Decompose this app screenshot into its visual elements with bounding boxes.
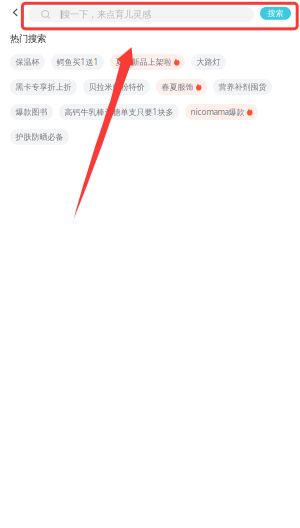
button[interactable]: Back [6, 1, 24, 23]
button[interactable]: 夏日新品上架啦 [110, 54, 185, 70]
staticText: 热门搜索 [10, 33, 46, 44]
button[interactable]: 大路灯 [191, 54, 226, 70]
staticText: 贝拉米奶粉特价 [88, 82, 144, 92]
staticText: 夏日新品上架啦 [115, 57, 171, 67]
button[interactable]: 贝拉米奶粉特价 [83, 79, 150, 95]
button[interactable]: 保温杯 [10, 54, 45, 70]
button[interactable]: 爆款图书 [10, 104, 53, 120]
staticText: 黑卡专享折上折 [15, 82, 71, 92]
button[interactable]: 鳄鱼买1送1 [51, 54, 104, 70]
staticText: 搜索 [267, 8, 283, 18]
staticText: 营养补剂囤货 [218, 82, 266, 92]
staticText: 春夏服饰 [161, 82, 193, 92]
staticText: 护肤防晒必备 [15, 132, 63, 142]
staticText: 保温杯 [15, 57, 39, 67]
staticText: nicomama爆款 [190, 107, 244, 117]
button[interactable]: 护肤防晒必备 [10, 129, 69, 145]
staticText: 鳄鱼买1送1 [56, 57, 98, 67]
button[interactable]: 高钙牛乳棒无糖单支只要1块多 [59, 104, 179, 120]
button[interactable]: 营养补剂囤货 [213, 79, 272, 95]
button[interactable]: 搜一下，来点育儿灵感 [28, 7, 254, 22]
button[interactable]: 黑卡专享折上折 [10, 79, 77, 95]
staticText: 高钙牛乳棒无糖单支只要1块多 [64, 107, 173, 117]
staticText: 搜一下，来点育儿灵感 [61, 9, 151, 20]
button[interactable]: 春夏服饰 [156, 79, 207, 95]
button[interactable]: 搜索 [260, 7, 291, 20]
button[interactable]: nicomama爆款 [185, 104, 258, 120]
staticText: 大路灯 [196, 57, 220, 67]
staticText: 爆款图书 [15, 107, 47, 117]
